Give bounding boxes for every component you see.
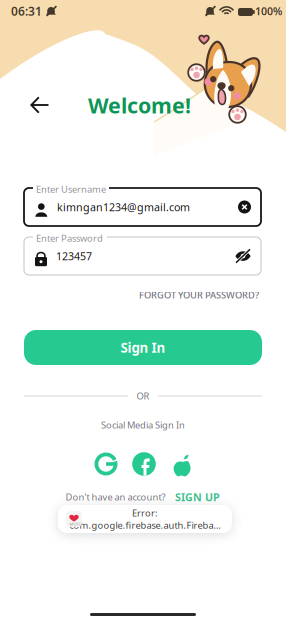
staticText: kimngan1234@gmail.com [57,200,190,214]
staticText: FORGOT YOUR PASSWORD? [139,289,259,301]
button[interactable]: Sign in with Google [94,452,118,476]
staticText: Social Media Sign In [101,419,185,431]
staticText: Welcome! [88,91,191,119]
staticText: SIGN UP [175,490,220,504]
staticText: 123457 [56,249,92,263]
staticText: Enter Password [36,232,103,244]
staticText: com.google.firebase.auth.Fireba… [69,519,220,531]
staticText: Don't have an account? [65,491,165,503]
button[interactable]: Sign in with Facebook [132,452,156,476]
staticText: 100% [255,4,282,18]
staticText: Error: [132,507,158,519]
button[interactable]: Sign in with Apple [170,452,192,476]
button[interactable]: SIGN UP [174,490,220,504]
staticText: 06:31 [11,3,42,19]
staticText: Sign In [120,339,165,356]
staticText: OR [136,390,149,402]
button[interactable]: Sign In [24,330,262,365]
button[interactable]: Back [22,88,58,122]
staticText: MOTO [69,521,81,527]
staticText: Enter Username [36,183,106,195]
button[interactable]: FORGOT YOUR PASSWORD? [136,288,262,302]
